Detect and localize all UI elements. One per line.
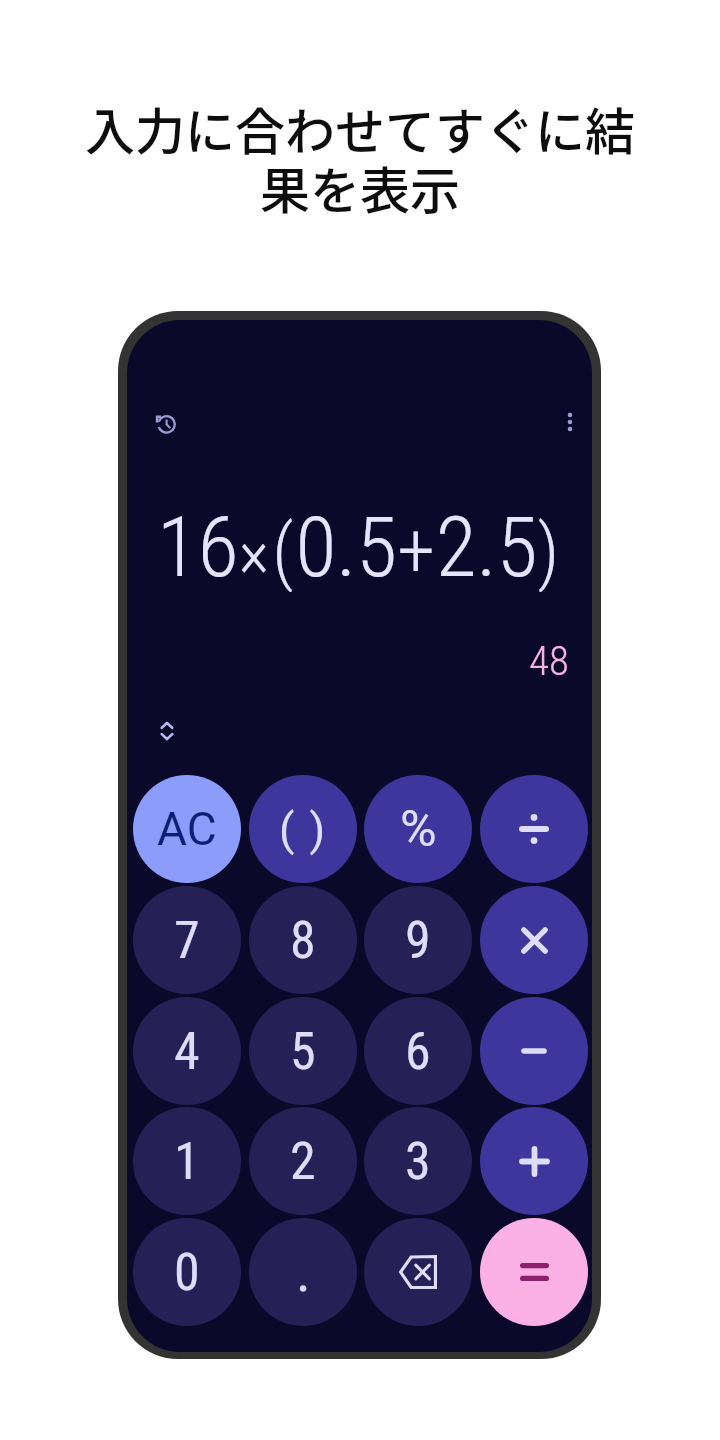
button[interactable]: . — [249, 1218, 357, 1326]
staticText: AC — [157, 802, 217, 856]
button[interactable]: Equals — [480, 1218, 588, 1326]
button[interactable]: Backspace — [364, 1218, 472, 1326]
staticText: 0 — [174, 1242, 200, 1303]
button[interactable]: Multiply — [480, 886, 588, 994]
button[interactable]: Add — [480, 1107, 588, 1215]
button[interactable]: 0 — [133, 1218, 241, 1326]
button[interactable]: Subtract — [480, 997, 588, 1105]
staticText: 7 — [174, 910, 200, 971]
staticText: 6 — [405, 1021, 431, 1082]
button[interactable]: Expand — [149, 713, 185, 749]
button[interactable]: AC — [133, 775, 241, 883]
button[interactable]: 6 — [364, 997, 472, 1105]
button[interactable]: 5 — [249, 997, 357, 1105]
staticText: 16×(0.5+2.5) — [157, 498, 562, 592]
staticText: 3 — [405, 1131, 431, 1192]
staticText: 4 — [174, 1021, 200, 1082]
button[interactable]: 1 — [133, 1107, 241, 1215]
staticText: 入力に合わせてすぐに結 果を表示 — [85, 92, 635, 224]
button[interactable]: 4 — [133, 997, 241, 1105]
staticText: 48 — [529, 637, 569, 685]
button[interactable]: 8 — [249, 886, 357, 994]
staticText: 2 — [290, 1131, 316, 1192]
staticText: 8 — [290, 910, 316, 971]
button[interactable]: More options — [552, 404, 588, 440]
button[interactable]: 7 — [133, 886, 241, 994]
button[interactable]: Divide — [480, 775, 588, 883]
button[interactable]: % — [364, 775, 472, 883]
staticText: 9 — [405, 910, 431, 971]
staticText: 1 — [174, 1131, 200, 1192]
staticText: . — [296, 1239, 311, 1305]
button[interactable]: 9 — [364, 886, 472, 994]
button[interactable]: History — [147, 406, 183, 442]
staticText: % — [400, 800, 437, 859]
button[interactable]: 3 — [364, 1107, 472, 1215]
staticText: ( ) — [279, 803, 328, 856]
staticText: 5 — [290, 1021, 316, 1082]
button[interactable]: ( ) — [249, 775, 357, 883]
button[interactable]: 2 — [249, 1107, 357, 1215]
